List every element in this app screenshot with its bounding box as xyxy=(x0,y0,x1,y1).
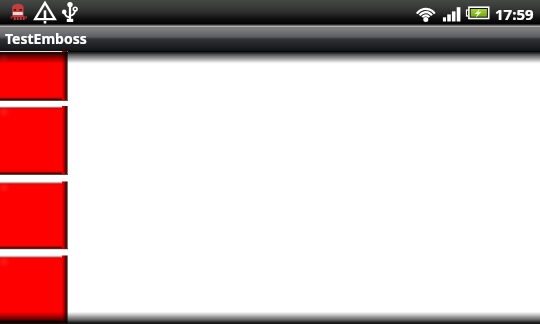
staticText: TestEmboss xyxy=(5,29,87,48)
button[interactable]: 17:59 xyxy=(0,0,540,24)
button[interactable]: Embossed shapes list xyxy=(0,52,540,324)
staticText: 17:59 xyxy=(495,4,534,24)
button[interactable]: TestEmboss xyxy=(0,24,540,52)
